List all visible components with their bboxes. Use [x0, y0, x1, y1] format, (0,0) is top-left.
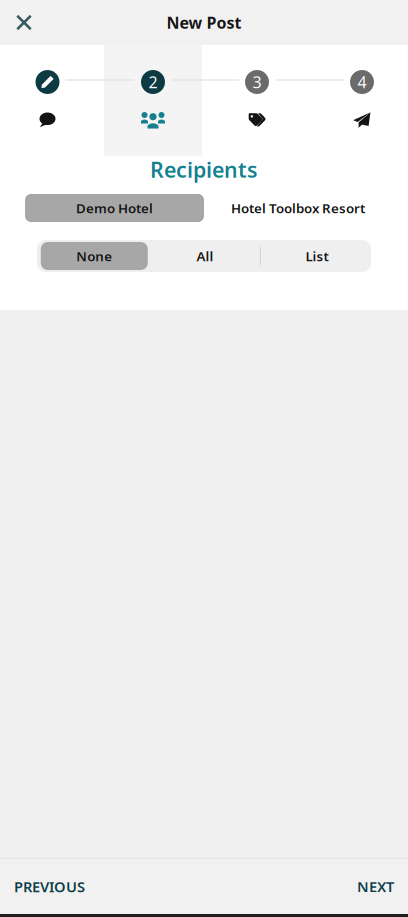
button[interactable]: Step 1 — [7, 68, 87, 132]
staticText: PREVIOUS — [14, 877, 85, 896]
staticText: 4 — [357, 71, 366, 93]
button[interactable]: Step 3 — [217, 68, 297, 132]
button[interactable]: List — [263, 242, 370, 270]
button[interactable]: None — [41, 242, 148, 270]
staticText: New Post — [166, 12, 241, 33]
button[interactable]: All — [151, 242, 258, 270]
staticText: Demo Hotel — [76, 199, 153, 217]
staticText: List — [305, 247, 328, 265]
staticText: 2 — [148, 71, 157, 93]
button[interactable]: Step 2 — [113, 68, 193, 132]
staticText: None — [76, 247, 112, 265]
staticText: All — [196, 247, 213, 265]
staticText: Hotel Toolbox Resort — [231, 199, 365, 217]
button[interactable]: NEXT — [343, 859, 408, 914]
staticText: Recipients — [150, 155, 258, 184]
staticText: NEXT — [357, 877, 394, 896]
button[interactable]: Close — [0, 0, 46, 44]
button[interactable]: PREVIOUS — [0, 859, 99, 914]
button[interactable]: Demo Hotel — [25, 194, 204, 222]
button[interactable]: Hotel Toolbox Resort — [208, 194, 387, 222]
button[interactable]: Step 4 — [322, 68, 402, 132]
staticText: 3 — [252, 71, 261, 93]
